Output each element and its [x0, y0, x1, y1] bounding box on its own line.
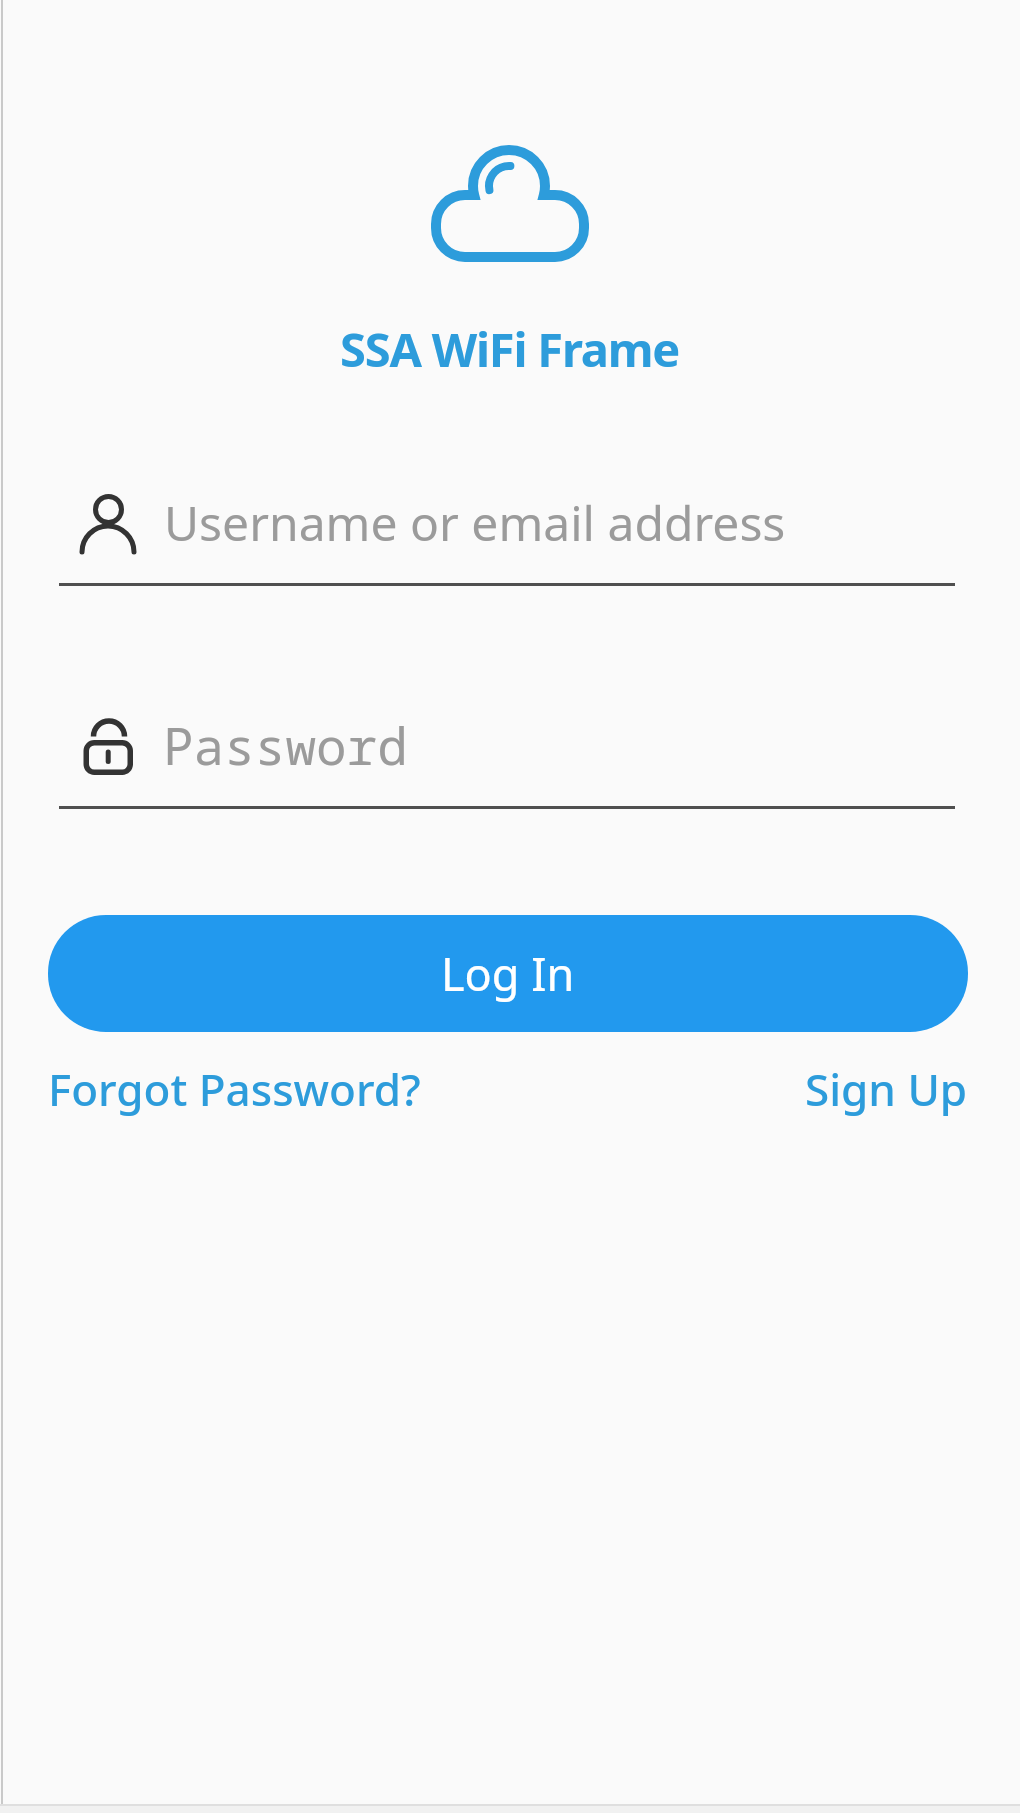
button[interactable]: Username or email address — [59, 478, 955, 588]
staticText: Password — [163, 710, 408, 779]
staticText: Sign Up — [805, 1059, 968, 1119]
staticText: Forgot Password? — [48, 1059, 421, 1119]
button[interactable]: Password — [59, 700, 955, 810]
button[interactable]: Forgot Password? — [48, 1059, 421, 1119]
staticText: Username or email address — [164, 490, 786, 555]
button[interactable]: Log In — [48, 915, 968, 1032]
staticText: SSA WiFi Frame — [340, 317, 680, 381]
staticText: Log In — [441, 943, 575, 1004]
button[interactable]: Sign Up — [805, 1059, 968, 1119]
